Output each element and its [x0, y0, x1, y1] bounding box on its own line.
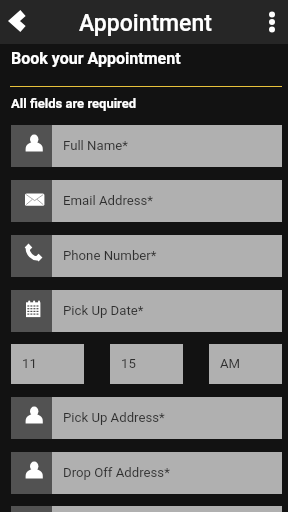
- staticText: Pick Up Date*: [63, 303, 144, 318]
- button[interactable]: Drop Off Address*: [11, 452, 282, 494]
- staticText: Drop Off Address*: [63, 465, 170, 480]
- button[interactable]: More options: [256, 0, 288, 44]
- staticText: Pick Up Address*: [63, 410, 165, 425]
- button[interactable]: Back: [0, 0, 33, 44]
- button[interactable]: Full Name*: [11, 125, 282, 167]
- button[interactable]: Pick Up Date*: [11, 290, 282, 332]
- staticText: Appointment: [79, 10, 212, 37]
- staticText: All fields are required: [11, 96, 137, 111]
- staticText: Book your Appointment: [11, 49, 181, 68]
- button[interactable]: 11: [11, 344, 84, 384]
- button[interactable]: AM: [209, 344, 282, 384]
- button[interactable]: Comments: [11, 506, 282, 512]
- button[interactable]: Email Address*: [11, 180, 282, 222]
- staticText: 11: [22, 356, 37, 371]
- button[interactable]: 15: [110, 344, 183, 384]
- staticText: Full Name*: [63, 138, 128, 153]
- staticText: Phone Number*: [63, 248, 157, 263]
- staticText: 15: [121, 356, 136, 371]
- button[interactable]: Phone Number*: [11, 235, 282, 277]
- staticText: Email Address*: [63, 193, 154, 208]
- staticText: AM: [220, 356, 241, 371]
- button[interactable]: Pick Up Address*: [11, 397, 282, 439]
